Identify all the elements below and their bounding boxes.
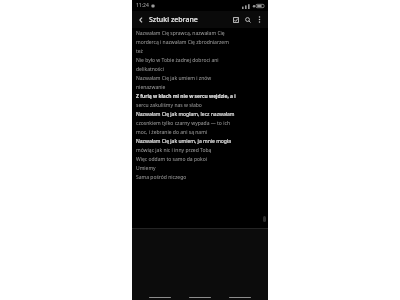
staticText: Nazwałam Cię jak umiem i znów [136,75,264,84]
staticText: nienazwanie [136,84,264,93]
button[interactable]: More options [254,14,265,25]
staticText: delikatności [136,66,264,75]
staticText: moc, i żebranie do ani są nami [136,129,264,138]
button[interactable]: Sztuki zebrane [149,15,230,25]
staticText: Więc oddam to samo da pokoi [136,156,264,165]
button[interactable]: Back [135,14,147,26]
button[interactable]: Navigation [228,294,252,300]
staticText: sercu zakuliśmy nas w słabo [136,102,264,111]
staticText: Umiemy [136,165,264,174]
staticText: Nie było w Tobie żadnej dobroci ani [136,57,264,66]
staticText: Nazwałam Cię sprawcą, nazwałam Cię [136,30,264,39]
staticText: Nazwałam Cię jak mogłam, lecz nazwałam [136,111,264,120]
button[interactable]: Search [242,14,254,26]
staticText: Sztuki zebrane [149,15,198,25]
staticText: mordercą i nazwałam Cię zbrodniarzem [136,39,264,48]
button[interactable]: Navigation [188,294,212,300]
button[interactable]: Navigation [148,294,172,300]
staticText: też [136,48,264,57]
staticText: Nazwałam Cię jak umiem, ja mnie mogła [136,138,264,147]
staticText: czosnkiem tylko czarny wypada — to ich [136,120,264,129]
staticText: mówiąc jak nic i inny przed Tobą [136,147,264,156]
staticText: Sama pośród niczego [136,174,264,183]
staticText: Z furią w kłach mi nie w sercu wejdzie, … [136,93,264,102]
staticText: 11:24 [136,2,149,9]
button[interactable]: Select [230,14,242,26]
